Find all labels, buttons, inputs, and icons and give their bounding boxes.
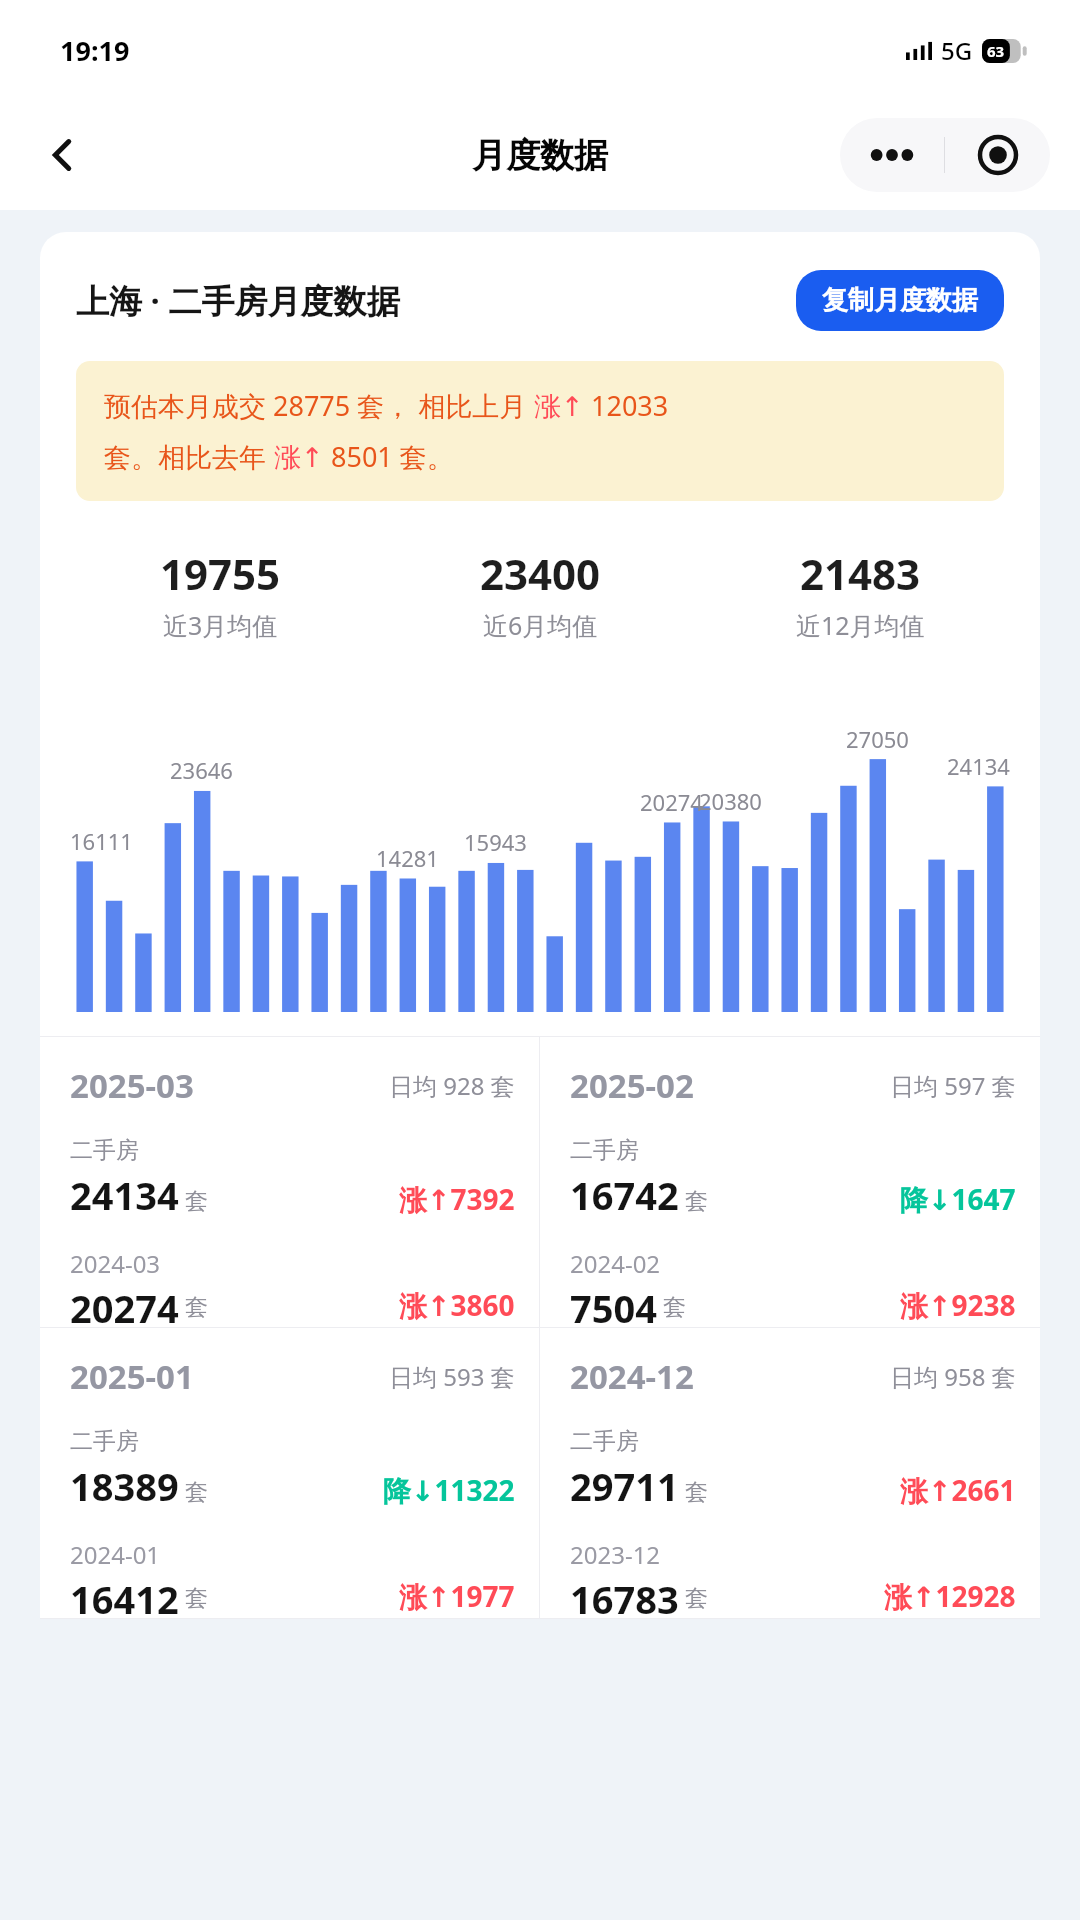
button[interactable]: Close	[945, 118, 1050, 192]
staticText: 套	[185, 1584, 208, 1613]
staticText: 2025-02	[570, 1063, 694, 1108]
staticText: 套	[685, 1584, 708, 1613]
staticText: 预估本月成交 28775 套， 相比上月	[104, 387, 534, 424]
staticText: 2024-01	[70, 1538, 161, 1571]
staticText: 16412	[70, 1573, 179, 1618]
staticText: 二手房	[570, 1427, 639, 1456]
staticText: 20274	[70, 1282, 179, 1327]
staticText: 8501 套。	[324, 438, 454, 475]
staticText: 27050	[846, 724, 909, 754]
staticText: 近12月均值	[796, 608, 925, 642]
staticText: 涨↑	[274, 441, 324, 475]
staticText: 日均 928 套	[389, 1069, 515, 1102]
staticText: 近6月均值	[483, 608, 598, 642]
staticText: 24134	[947, 751, 1010, 781]
staticText: 16742	[570, 1169, 679, 1221]
staticText: 2025-03	[70, 1063, 194, 1108]
staticText: 涨↑7392	[399, 1180, 515, 1218]
staticText: 7504	[570, 1282, 657, 1327]
staticText: 套	[185, 1187, 208, 1216]
staticText: 降↓11322	[383, 1471, 515, 1509]
staticText: 2024-12	[570, 1354, 694, 1399]
staticText: 20380	[699, 786, 762, 816]
button[interactable]: More options	[840, 118, 944, 192]
staticText: 套	[685, 1478, 708, 1507]
staticText: 日均 958 套	[890, 1360, 1016, 1393]
button[interactable]: 2024-12	[540, 1328, 1040, 1618]
staticText: 2024-02	[570, 1247, 661, 1280]
staticText: 29711	[570, 1460, 679, 1512]
staticText: 套	[185, 1478, 208, 1507]
staticText: 2023-12	[570, 1538, 661, 1571]
staticText: 涨↑12928	[884, 1577, 1016, 1615]
button[interactable]: 2025-01	[40, 1328, 539, 1618]
staticText: 套	[185, 1293, 208, 1322]
staticText: 16111	[70, 826, 133, 856]
button[interactable]: 2025-02	[540, 1037, 1040, 1327]
staticText: 63	[987, 41, 1005, 61]
staticText: 18389	[70, 1460, 179, 1512]
staticText: 日均 593 套	[389, 1360, 515, 1393]
staticText: 月度数据	[472, 134, 608, 177]
staticText: 24134	[70, 1169, 179, 1221]
staticText: 5G	[941, 34, 973, 67]
staticText: 涨↑9238	[900, 1286, 1016, 1324]
staticText: 16783	[570, 1573, 679, 1618]
staticText: 19:19	[60, 32, 130, 69]
staticText: 15943	[464, 827, 527, 857]
button[interactable]: 2025-03	[40, 1037, 539, 1327]
staticText: 12033	[584, 387, 669, 424]
staticText: 2024-03	[70, 1247, 161, 1280]
staticText: 14281	[376, 843, 439, 873]
staticText: 日均 597 套	[890, 1069, 1016, 1102]
staticText: 涨↑2661	[900, 1471, 1016, 1509]
staticText: 二手房	[570, 1136, 639, 1165]
staticText: 21483	[800, 545, 921, 602]
staticText: 二手房	[70, 1427, 139, 1456]
staticText: 二手房	[70, 1136, 139, 1165]
button[interactable]: Back	[28, 120, 98, 190]
staticText: 降↓1647	[900, 1180, 1016, 1218]
staticText: 23646	[170, 755, 233, 785]
staticText: 19755	[160, 545, 281, 602]
staticText: 复制月度数据	[822, 284, 978, 317]
staticText: 23400	[480, 545, 601, 602]
staticText: 套	[663, 1293, 686, 1322]
staticText: 涨↑3860	[399, 1286, 515, 1324]
staticText: 2025-01	[70, 1354, 194, 1399]
staticText: 上海 · 二手房月度数据	[76, 278, 400, 323]
staticText: 套	[685, 1187, 708, 1216]
button[interactable]: 复制月度数据	[796, 270, 1004, 331]
staticText: 套。相比去年	[104, 438, 274, 475]
staticText: 涨↑	[534, 390, 584, 424]
staticText: 涨↑1977	[399, 1577, 515, 1615]
staticText: 近3月均值	[163, 608, 278, 642]
staticText: 20274	[640, 787, 703, 817]
